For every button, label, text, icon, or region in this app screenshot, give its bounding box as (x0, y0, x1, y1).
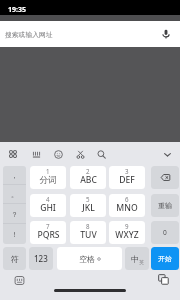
button[interactable]: Voice search (157, 25, 175, 43)
button[interactable]: Switch input method (13, 274, 25, 286)
button[interactable]: 空格 (57, 247, 122, 270)
button[interactable]: 4 (30, 194, 66, 217)
staticText: 4 (46, 195, 50, 203)
staticText: TUV (80, 229, 97, 241)
button[interactable]: Backspace (151, 166, 179, 189)
staticText: 开始 (158, 254, 172, 263)
button[interactable]: 重输 (151, 194, 179, 217)
staticText: 123 (34, 253, 48, 264)
button[interactable]: 123 (29, 247, 53, 270)
staticText: 19:35 (8, 5, 26, 15)
button[interactable]: 9 (109, 221, 145, 244)
staticText: 。 (11, 190, 18, 199)
staticText: 6 (125, 195, 129, 203)
button[interactable]: Keyboard apps (5, 146, 21, 162)
button[interactable]: Clipboard history (157, 273, 170, 286)
button[interactable]: 7 (30, 221, 66, 244)
button[interactable]: Keyboard layout (28, 146, 44, 162)
button[interactable]: Clipboard (72, 146, 88, 162)
staticText: 2 (86, 167, 90, 175)
staticText: 8 (86, 222, 90, 230)
staticText: 9 (125, 222, 129, 230)
staticText: ABC (80, 174, 97, 186)
button[interactable]: ！ (3, 224, 26, 244)
staticText: ， (11, 171, 18, 180)
staticText: JKL (82, 202, 95, 214)
button[interactable]: 符 (3, 247, 26, 270)
button[interactable]: 3 (109, 166, 145, 189)
button[interactable]: 8 (70, 221, 106, 244)
staticText: DEF (119, 174, 135, 186)
button[interactable]: 搜索或输入网址 (5, 30, 53, 39)
staticText: 分词 (39, 175, 57, 186)
staticText: 3 (125, 167, 129, 175)
staticText: 英 (139, 259, 144, 265)
staticText: 7 (46, 222, 50, 230)
staticText: 中 (131, 254, 139, 264)
button[interactable]: 2 (70, 166, 106, 189)
staticText: 5 (86, 195, 90, 203)
button[interactable]: ？ (3, 204, 26, 224)
staticText: ？ (11, 210, 18, 219)
button[interactable]: 5 (70, 194, 106, 217)
button[interactable]: Hide keyboard (159, 146, 175, 162)
button[interactable]: 中 (125, 247, 149, 270)
button[interactable]: Emoji (50, 146, 66, 162)
button[interactable]: 开始 (151, 247, 179, 270)
staticText: MNO (116, 202, 138, 214)
button[interactable]: 0 (151, 221, 179, 244)
staticText: PQRS (37, 229, 60, 241)
staticText: 重输 (158, 201, 172, 210)
button[interactable]: 。 (3, 185, 26, 204)
staticText: WXYZ (115, 229, 139, 241)
staticText: 1 (46, 167, 50, 175)
staticText: 空格 (79, 254, 95, 264)
staticText: 符 (11, 254, 19, 264)
button[interactable]: Search (93, 146, 109, 162)
button[interactable]: 6 (109, 194, 145, 217)
button[interactable]: 1 (30, 166, 66, 189)
button[interactable]: ， (3, 166, 26, 185)
staticText: ！ (11, 230, 18, 239)
staticText: GHI (40, 202, 56, 214)
staticText: 0 (163, 228, 167, 237)
